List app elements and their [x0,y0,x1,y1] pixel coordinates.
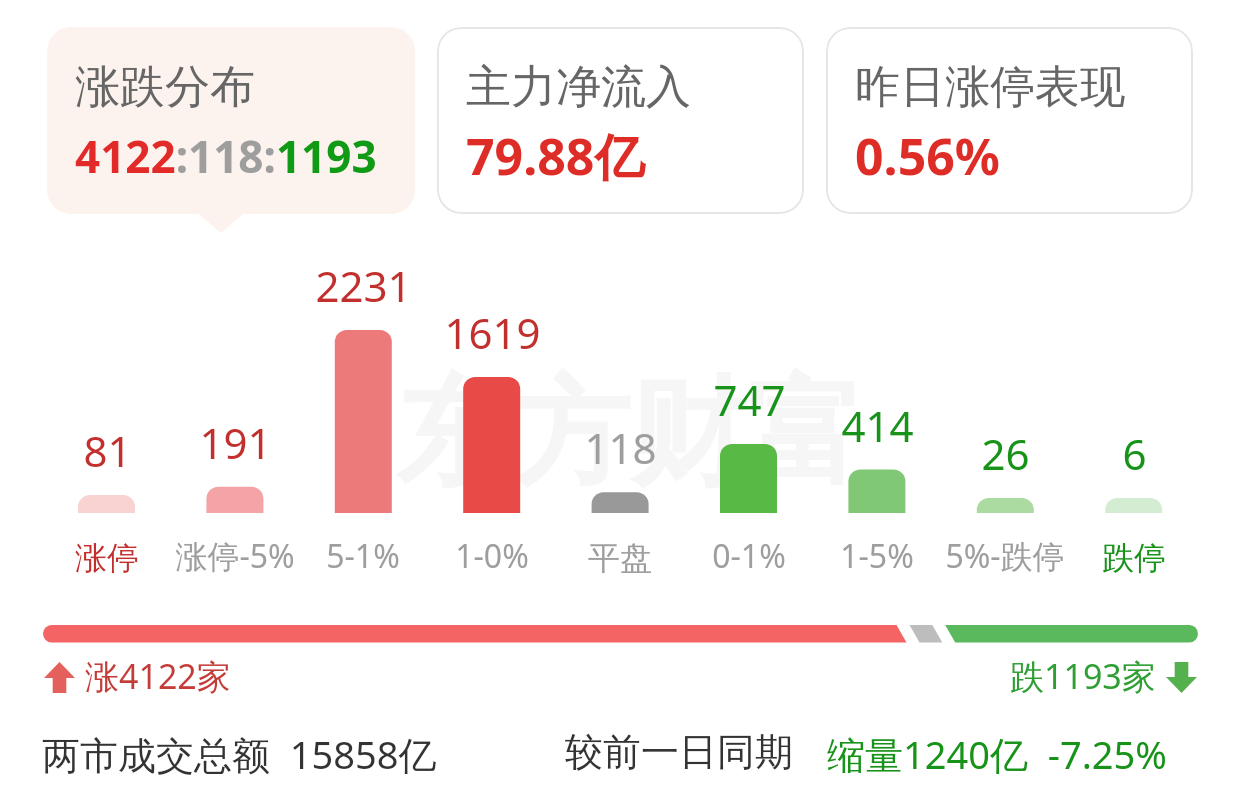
staticText: 1-0% [455,534,529,578]
staticText: 5-1% [326,534,400,578]
button[interactable]: 上涨 [44,653,231,699]
staticText: 191 [199,414,272,471]
staticText: 6 [1122,425,1147,482]
staticText: 平盘 [588,538,652,578]
button[interactable]: 1-0% [428,250,556,580]
staticText: 2231 [315,257,412,314]
staticText: 主力净流入 [466,59,691,116]
staticText: 涨停-5% [175,534,295,578]
staticText: 1619 [444,304,541,361]
staticText: 跌1193家 [1010,653,1156,699]
staticText: 跌停 [1102,538,1166,578]
staticText: 涨4122家 [85,653,231,699]
staticText: 0.56% [855,122,1000,190]
button[interactable]: 5%-跌停 [941,250,1069,580]
other: 下跌 [1166,662,1197,693]
staticText: 4122:118:1193 [75,126,377,186]
staticText: 118 [584,419,657,476]
button[interactable]: 跌停 [1070,250,1198,580]
staticText: 0-1% [712,534,786,578]
staticText: 涨跌分布 [75,59,255,116]
staticText: 东方财富 [396,360,864,507]
staticText: 1-5% [840,534,914,578]
button[interactable]: 涨停-5% [171,250,299,580]
staticText: 昨日涨停表现 [855,59,1125,116]
button[interactable]: 昨日涨停表现 [826,27,1193,214]
button[interactable]: 涨跌分布 [47,27,415,214]
button[interactable]: 主力净流入 [437,27,804,214]
staticText: 747 [713,371,786,428]
button[interactable]: 5-1% [299,250,427,580]
staticText: 414 [841,397,914,454]
button[interactable]: 平盘 [556,250,684,580]
button[interactable]: 1-5% [813,250,941,580]
button[interactable]: 涨停 [43,250,171,580]
button[interactable]: 跌1193家 [1010,653,1197,699]
staticText: 涨停 [75,538,139,578]
button[interactable]: 0-1% [685,250,813,580]
staticText: 两市成交总额 15858亿 [42,728,437,780]
staticText: 26 [981,425,1030,482]
staticText: 5%-跌停 [945,534,1065,578]
staticText: 79.88亿 [466,122,645,190]
staticText: 较前一日同期 [565,728,793,776]
staticText: 缩量1240亿 -7.25% [827,728,1167,780]
other: 上涨 [44,662,75,693]
staticText: 81 [83,422,132,479]
